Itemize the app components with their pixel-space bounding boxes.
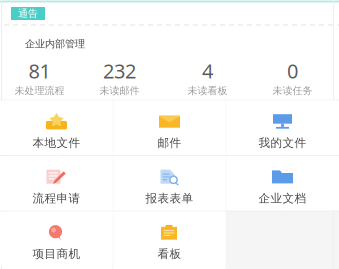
button[interactable]: 通告 — [11, 7, 45, 20]
staticText: 未读邮件 — [99, 84, 139, 97]
staticText: 4 — [202, 57, 213, 84]
staticText: 邮件 — [157, 136, 181, 150]
staticText: 未处理流程 — [14, 84, 64, 97]
staticText: 我的文件 — [258, 136, 306, 150]
button[interactable]: 我的文件 — [226, 100, 338, 154]
button[interactable]: 0 — [251, 63, 333, 91]
button[interactable]: 81 — [0, 63, 80, 91]
staticText: 通告 — [18, 7, 38, 20]
button[interactable]: 4 — [166, 63, 248, 91]
staticText: 0 — [287, 57, 298, 84]
staticText: 本地文件 — [32, 136, 80, 150]
staticText: 企业内部管理 — [25, 38, 85, 50]
button[interactable]: 报表表单 — [113, 156, 225, 210]
staticText: 未读看板 — [187, 84, 227, 97]
staticText: 232 — [103, 57, 136, 84]
staticText: 未读任务 — [272, 84, 312, 97]
staticText: 81 — [28, 57, 50, 84]
button[interactable]: 232 — [78, 63, 160, 91]
staticText: 流程申请 — [32, 191, 80, 206]
button[interactable]: 企业文档 — [226, 156, 338, 210]
button[interactable]: 项目商机 — [0, 211, 112, 265]
button[interactable]: 流程申请 — [0, 156, 112, 210]
staticText: 企业文档 — [258, 191, 306, 206]
button[interactable]: 看板 — [113, 211, 225, 265]
button[interactable]: 邮件 — [113, 100, 225, 154]
staticText: 看板 — [157, 247, 181, 261]
staticText: 项目商机 — [32, 247, 80, 261]
staticText: 报表表单 — [145, 191, 193, 206]
button[interactable]: 本地文件 — [0, 100, 112, 154]
